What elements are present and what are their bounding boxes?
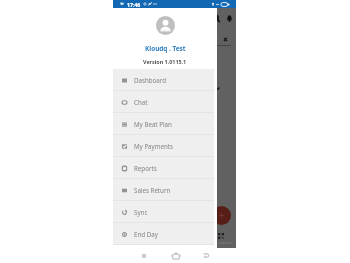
button[interactable]: Reports xyxy=(113,157,214,179)
staticText: Dashboard xyxy=(134,76,167,84)
button[interactable]: Add xyxy=(212,206,231,225)
button[interactable]: Notifications xyxy=(227,15,232,22)
staticText: Chat xyxy=(134,98,148,106)
button[interactable]: Back xyxy=(200,250,211,261)
button[interactable]: End Day xyxy=(113,223,214,245)
staticText: End Day xyxy=(134,230,158,238)
button[interactable]: My Payments xyxy=(113,135,214,157)
button[interactable]: Search xyxy=(213,15,220,22)
button[interactable]: Home xyxy=(170,250,181,261)
staticText: 17:46 xyxy=(127,1,141,8)
staticText: Reports xyxy=(134,164,157,172)
staticText: My Beat Plan xyxy=(134,120,172,128)
staticText: Sync xyxy=(134,208,148,216)
button[interactable]: Dashboard xyxy=(113,69,214,91)
button[interactable]: Sync xyxy=(113,201,214,223)
button[interactable]: Chat xyxy=(113,91,214,113)
staticText: Version 1.0115.1 xyxy=(143,58,187,65)
button[interactable]: My Beat Plan xyxy=(113,113,214,135)
staticText: My Payments xyxy=(134,142,174,150)
button[interactable]: Close xyxy=(223,37,228,42)
button[interactable]: Sales Return xyxy=(113,179,214,201)
button[interactable]: Recents xyxy=(138,250,149,261)
staticText: Sales Return xyxy=(134,186,171,194)
staticText: Kloudq . Test xyxy=(145,44,186,53)
